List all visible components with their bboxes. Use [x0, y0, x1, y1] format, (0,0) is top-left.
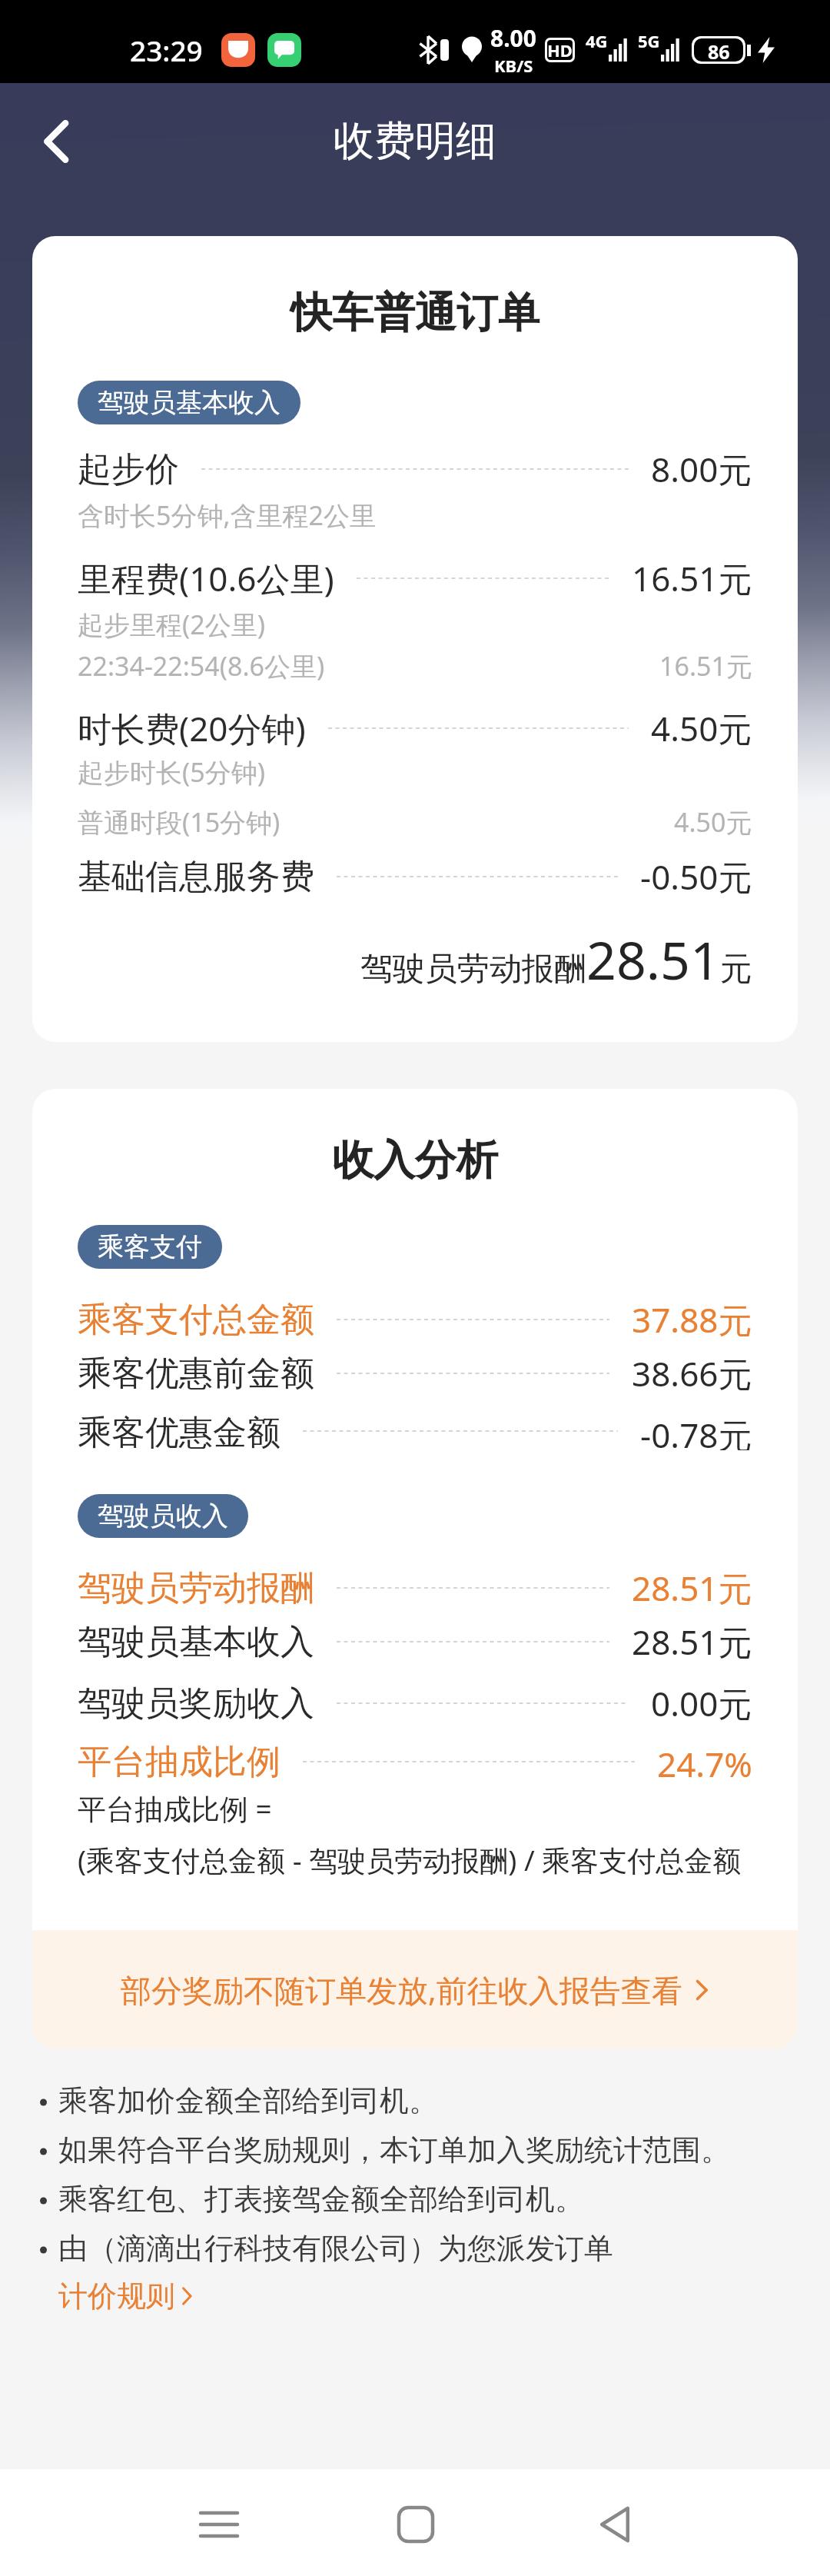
staticText: 起步里程(2公里) — [78, 607, 265, 642]
staticText: -0.50元 — [640, 854, 752, 900]
staticText: 驾驶员基本收入 — [98, 386, 281, 419]
staticText: 16.51元 — [632, 555, 752, 601]
staticText: 时长费(20分钟) — [78, 705, 306, 751]
staticText: 起步时长(5分钟) — [78, 754, 265, 790]
staticText: 由（滴滴出行科技有限公司）为您派发订单 — [58, 2230, 613, 2267]
staticText: 28.51元 — [632, 1565, 752, 1611]
staticText: 38.66元 — [632, 1350, 752, 1396]
staticText: 86 — [708, 38, 730, 62]
staticText: 4.50元 — [674, 804, 752, 840]
staticText: 乘客支付 — [98, 1230, 202, 1263]
button[interactable]: Recents — [173, 2478, 265, 2571]
staticText: 8.00元 — [651, 446, 752, 492]
staticText: 乘客红包、打表接驾金额全部给到司机。 — [58, 2181, 584, 2218]
staticText: 收入分析 — [78, 1134, 752, 1186]
staticText: 含时长5分钟,含里程2公里 — [78, 498, 377, 533]
button[interactable]: 计价规则 — [58, 2273, 194, 2319]
staticText: 起步价 — [78, 448, 179, 491]
staticText: HD — [547, 38, 573, 62]
staticText: 平台抽成比例 = — [78, 1789, 272, 1828]
staticText: 如果符合平台奖励规则，本订单加入奖励统计范围。 — [58, 2132, 730, 2168]
staticText: 23:29 — [130, 31, 203, 69]
staticText: 0.00元 — [651, 1680, 752, 1726]
staticText: 16.51元 — [659, 648, 752, 684]
staticText: KB/S — [494, 54, 533, 77]
staticText: 28.51 — [586, 924, 720, 995]
staticText: 驾驶员基本收入 — [78, 1621, 314, 1663]
staticText: 驾驶员奖励收入 — [78, 1682, 314, 1725]
staticText: 驾驶员劳动报酬 — [360, 949, 586, 990]
staticText: 4.50元 — [651, 705, 752, 751]
staticText: 驾驶员劳动报酬 — [78, 1567, 314, 1609]
staticText: 28.51元 — [632, 1619, 752, 1665]
button[interactable]: Back — [18, 103, 95, 180]
button[interactable]: Home — [370, 2478, 462, 2571]
button[interactable]: 部分奖励不随订单发放,前往收入报告查看 — [32, 1930, 798, 2048]
staticText: -0.78元 — [640, 1412, 752, 1450]
staticText: 收费明细 — [334, 115, 496, 167]
staticText: 37.88元 — [632, 1296, 752, 1343]
staticText: 计价规则 — [58, 2278, 175, 2315]
staticText: 24.7% — [657, 1741, 752, 1782]
staticText: 部分奖励不随订单发放,前往收入报告查看 — [121, 1969, 682, 2011]
staticText: 8.00 — [490, 22, 536, 54]
staticText: 5G — [638, 29, 660, 52]
button[interactable]: Back — [569, 2478, 661, 2571]
staticText: 4G — [586, 29, 608, 52]
staticText: (乘客支付总金额 - 驾驶员劳动报酬) / 乘客支付总金额 — [78, 1840, 752, 1879]
staticText: 乘客加价金额全部给到司机。 — [58, 2082, 438, 2119]
staticText: 驾驶员收入 — [98, 1499, 228, 1533]
staticText: 乘客优惠前金额 — [78, 1353, 314, 1395]
staticText: 快车普通订单 — [78, 287, 752, 339]
staticText: 元 — [720, 949, 752, 990]
staticText: 平台抽成比例 — [78, 1741, 281, 1782]
staticText: 基础信息服务费 — [78, 856, 314, 898]
staticText: 22:34-22:54(8.6公里) — [78, 648, 325, 684]
staticText: 普通时段(15分钟) — [78, 804, 281, 840]
staticText: 乘客优惠金额 — [78, 1412, 281, 1450]
staticText: 里程费(10.6公里) — [78, 555, 334, 601]
staticText: 乘客支付总金额 — [78, 1299, 314, 1341]
